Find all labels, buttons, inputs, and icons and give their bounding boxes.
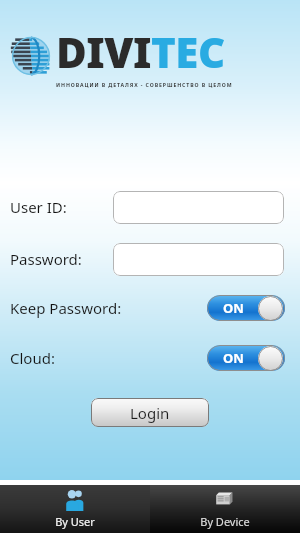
button[interactable]: Login: [91, 398, 209, 427]
staticText: Login: [130, 403, 170, 423]
staticText: By Device: [200, 514, 250, 529]
staticText: ON: [223, 299, 244, 317]
staticText: ON: [223, 349, 244, 367]
other: By User: [64, 489, 86, 511]
button[interactable]: [113, 243, 284, 276]
staticText: Cloud:: [10, 348, 55, 368]
staticText: User ID:: [10, 197, 67, 217]
staticText: Password:: [10, 249, 82, 269]
button[interactable]: [113, 191, 284, 224]
staticText: TEC: [151, 23, 225, 80]
button[interactable]: By Device: [150, 485, 300, 533]
staticText: ИННОВАЦИИ В ДЕТАЛЯХ - СОВЕРШЕНСТВО В ЦЕЛ…: [56, 81, 233, 88]
button[interactable]: By User: [0, 485, 150, 533]
button[interactable]: Toggle on: [207, 295, 285, 321]
other: By Device: [214, 489, 236, 511]
button[interactable]: Toggle on: [207, 345, 285, 371]
staticText: Keep Password:: [10, 298, 122, 318]
staticText: By User: [55, 514, 95, 529]
staticText: DIVI: [56, 23, 151, 80]
